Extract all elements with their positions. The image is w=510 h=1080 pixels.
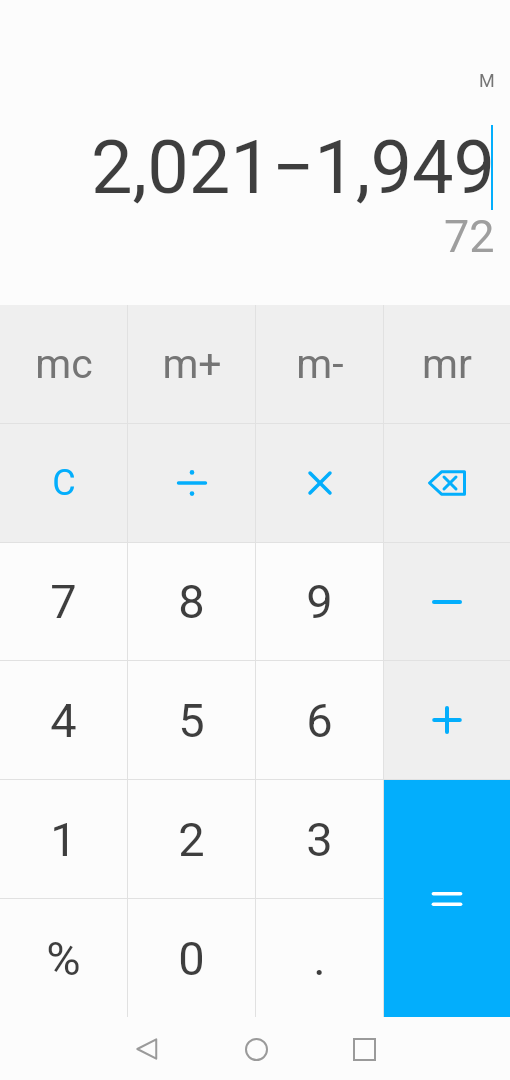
staticText: 6 bbox=[306, 693, 333, 748]
button[interactable]: m- bbox=[256, 305, 383, 423]
staticText: C bbox=[52, 462, 76, 504]
button[interactable]: . bbox=[256, 899, 383, 1017]
button[interactable]: 6 bbox=[256, 661, 383, 779]
button[interactable]: 7 bbox=[0, 543, 127, 660]
staticText: 2,021−1,949 bbox=[91, 124, 496, 211]
button[interactable]: Plus bbox=[384, 661, 510, 779]
staticText: M bbox=[479, 70, 495, 91]
button[interactable]: 1 bbox=[0, 780, 127, 898]
button[interactable]: Home bbox=[232, 1025, 280, 1073]
staticText: mr bbox=[422, 340, 472, 388]
staticText: 8 bbox=[178, 574, 205, 629]
staticText: 72 bbox=[444, 210, 495, 263]
staticText: 9 bbox=[306, 574, 333, 629]
button[interactable]: Equals bbox=[384, 780, 510, 1017]
staticText: 5 bbox=[178, 693, 205, 748]
staticText: m- bbox=[296, 340, 344, 388]
button[interactable]: mc bbox=[0, 305, 127, 423]
staticText: % bbox=[46, 931, 81, 986]
staticText: m+ bbox=[162, 340, 222, 388]
button[interactable]: 4 bbox=[0, 661, 127, 779]
button[interactable]: 3 bbox=[256, 780, 383, 898]
button[interactable]: 5 bbox=[128, 661, 255, 779]
button[interactable]: 2 bbox=[128, 780, 255, 898]
button[interactable]: % bbox=[0, 899, 127, 1017]
button[interactable]: 9 bbox=[256, 543, 383, 660]
button[interactable]: Divide bbox=[128, 424, 255, 542]
staticText: 2 bbox=[178, 812, 205, 867]
staticText: 3 bbox=[306, 812, 333, 867]
staticText: 1 bbox=[50, 812, 77, 867]
staticText: . bbox=[313, 931, 326, 986]
staticText: 4 bbox=[50, 693, 77, 748]
button[interactable]: 0 bbox=[128, 899, 255, 1017]
button[interactable]: Back bbox=[123, 1025, 171, 1073]
button[interactable]: Multiply bbox=[256, 424, 383, 542]
button[interactable]: Backspace bbox=[384, 424, 510, 542]
staticText: 0 bbox=[178, 931, 205, 986]
button[interactable]: m+ bbox=[128, 305, 255, 423]
button[interactable]: 8 bbox=[128, 543, 255, 660]
button[interactable]: C bbox=[0, 424, 127, 542]
button[interactable]: mr bbox=[384, 305, 510, 423]
button[interactable]: Minus bbox=[384, 543, 510, 660]
staticText: mc bbox=[35, 340, 93, 388]
button[interactable]: Recents bbox=[340, 1025, 388, 1073]
staticText: 7 bbox=[50, 574, 77, 629]
